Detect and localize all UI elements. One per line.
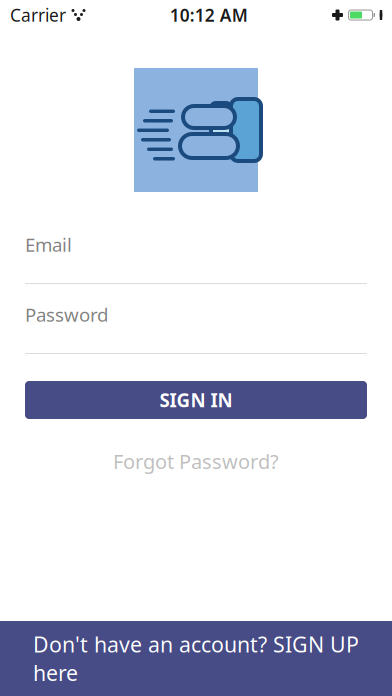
staticText: Carrier (10, 3, 66, 26)
staticText: 10:12 AM (170, 3, 248, 26)
staticText: Forgot Password? (113, 448, 279, 475)
button[interactable]: Don't have an account? SIGN UP here (0, 621, 392, 696)
button[interactable]: Forgot Password? (101, 442, 291, 481)
staticText: SIGN IN (159, 388, 232, 412)
staticText: Password (25, 302, 108, 327)
staticText: Email (25, 232, 72, 257)
button[interactable]: SIGN IN (25, 381, 367, 419)
staticText: Don't have an account? SIGN UP here (33, 630, 359, 687)
